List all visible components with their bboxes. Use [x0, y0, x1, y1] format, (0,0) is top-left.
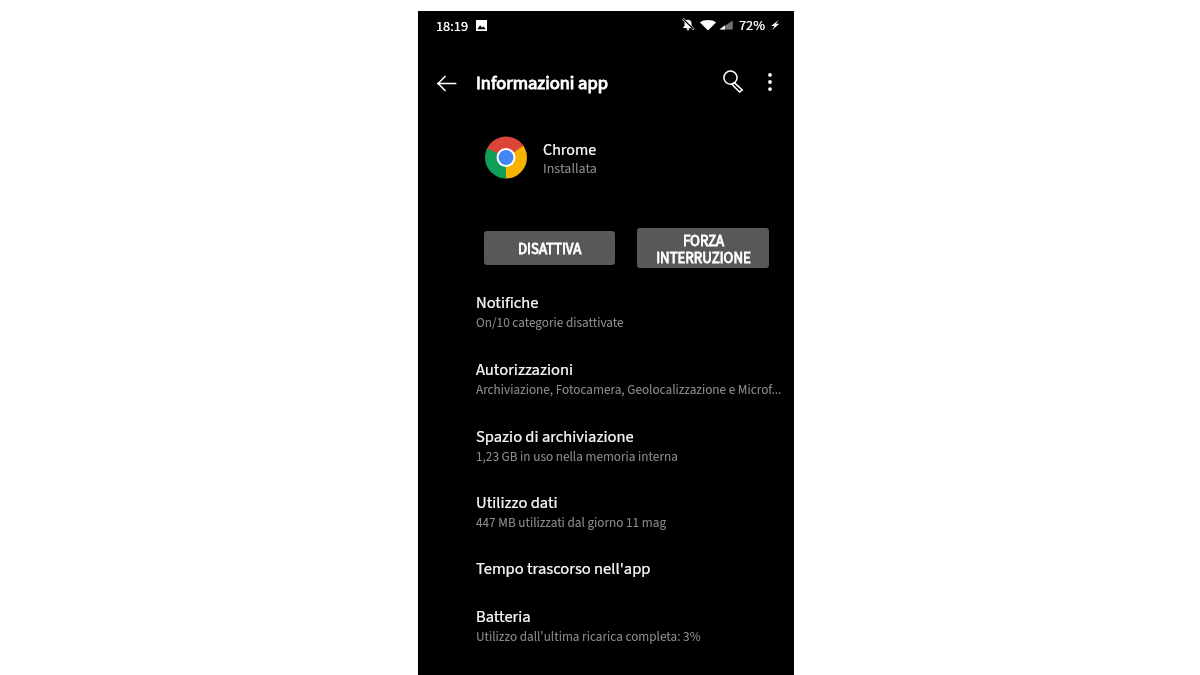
- staticText: Spazio di archiviazione: [476, 425, 634, 448]
- staticText: Utilizzo dall'ultima ricarica completa: …: [476, 627, 701, 646]
- staticText: 1,23 GB in uso nella memoria interna: [476, 447, 678, 466]
- staticText: Archiviazione, Fotocamera, Geolocalizzaz…: [476, 380, 782, 399]
- staticText: Tempo trascorso nell'app: [476, 557, 651, 580]
- staticText: Notifiche: [476, 291, 539, 314]
- staticText: Installata: [543, 159, 597, 179]
- button[interactable]: Batteria: [418, 605, 794, 671]
- button[interactable]: Utilizzo dati: [418, 491, 794, 557]
- staticText: 18:19: [436, 16, 468, 34]
- button[interactable]: Back: [427, 64, 465, 102]
- staticText: Informazioni app: [476, 70, 608, 96]
- staticText: DISATTIVA: [518, 239, 582, 260]
- button[interactable]: DISATTIVA: [484, 231, 615, 265]
- button[interactable]: Autorizzazioni: [418, 358, 794, 424]
- staticText: 72%: [739, 15, 765, 35]
- button[interactable]: FORZA INTERRUZIONE: [637, 228, 769, 268]
- staticText: FORZA INTERRUZIONE: [656, 231, 751, 268]
- staticText: On/10 categorie disattivate: [476, 313, 624, 332]
- button[interactable]: Search: [714, 62, 752, 100]
- button[interactable]: Notifiche: [418, 291, 794, 357]
- staticText: Batteria: [476, 605, 531, 628]
- staticText: Autorizzazioni: [476, 358, 573, 381]
- staticText: 447 MB utilizzati dal giorno 11 mag: [476, 513, 667, 532]
- button[interactable]: Spazio di archiviazione: [418, 425, 794, 491]
- staticText: Chrome: [543, 139, 597, 159]
- button[interactable]: More options: [753, 63, 786, 101]
- button[interactable]: Tempo trascorso nell'app: [418, 557, 794, 605]
- staticText: Utilizzo dati: [476, 491, 558, 514]
